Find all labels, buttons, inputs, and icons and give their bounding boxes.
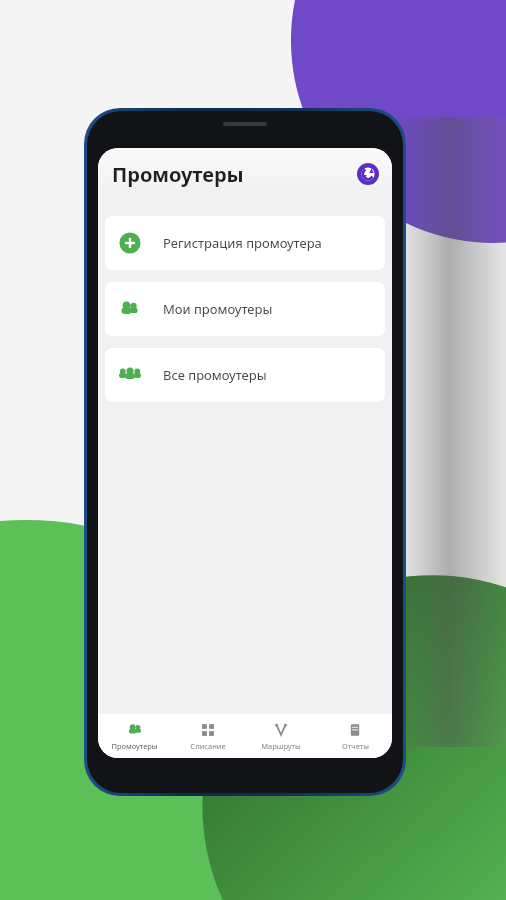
staticText: Маршруты	[261, 741, 301, 751]
button[interactable]: Регистрация промоутера	[105, 216, 385, 270]
staticText: Регистрация промоутера	[163, 234, 322, 252]
button[interactable]: Обновить	[356, 162, 380, 186]
button[interactable]: Промоутеры	[98, 714, 171, 758]
button[interactable]: Маршруты	[244, 714, 318, 758]
button[interactable]: Мои промоутеры	[105, 282, 385, 336]
button[interactable]: Все промоутеры	[105, 348, 385, 402]
button[interactable]: Списание	[171, 714, 244, 758]
staticText: Списание	[190, 741, 226, 751]
staticText: Промоутеры	[111, 741, 158, 751]
staticText: Отчеты	[342, 741, 369, 751]
button[interactable]: Отчеты	[318, 714, 392, 758]
staticText: Все промоутеры	[163, 366, 267, 384]
staticText: Промоутеры	[112, 161, 244, 188]
staticText: Мои промоутеры	[163, 300, 273, 318]
